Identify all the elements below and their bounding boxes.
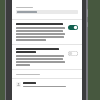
button[interactable] — [16, 10, 78, 14]
button[interactable]: Enable employee switch warning mode — [68, 25, 78, 30]
button[interactable]: Operate switch by touching it — [12, 45, 82, 69]
button[interactable] — [12, 79, 82, 90]
button[interactable]: Enable employee switch warning mode — [12, 20, 82, 44]
button[interactable]: Operate switch by touching it — [68, 51, 78, 56]
